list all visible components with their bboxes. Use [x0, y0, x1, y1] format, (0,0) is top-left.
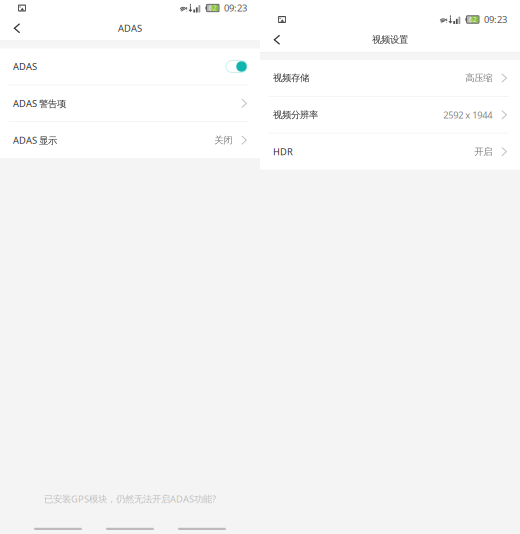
button[interactable]: Recent apps — [166, 517, 238, 530]
button[interactable]: HDR — [260, 134, 520, 170]
staticText: 关闭 — [214, 134, 232, 146]
staticText: 09:23 — [224, 2, 247, 14]
button[interactable]: ADAS 显示 — [0, 122, 260, 158]
staticText: ADAS — [13, 60, 37, 73]
staticText: HDR — [273, 145, 293, 158]
staticText: 视频存储 — [273, 72, 309, 84]
staticText: 62 — [469, 15, 477, 24]
staticText: 2592 x 1944 — [443, 109, 492, 121]
button[interactable]: Home — [94, 517, 166, 530]
button[interactable]: Back — [22, 517, 94, 530]
staticText: 视频分辨率 — [273, 109, 318, 121]
staticText: 视频设置 — [372, 34, 408, 45]
button[interactable]: 视频分辨率 — [260, 97, 520, 133]
button[interactable]: ADAS — [0, 48, 260, 84]
button[interactable]: 视频存储 — [260, 60, 520, 96]
button[interactable]: Back — [260, 26, 294, 54]
staticText: ADAS — [118, 22, 142, 34]
staticText: 开启 — [474, 146, 492, 157]
staticText: 已安装GPS模块，仍然无法开启ADAS功能? — [44, 493, 216, 505]
button[interactable]: ADAS 警告项 — [0, 85, 260, 121]
staticText: ADAS 警告项 — [13, 97, 66, 109]
button[interactable]: Back — [0, 14, 34, 42]
staticText: 高压缩 — [465, 72, 492, 84]
staticText: 62 — [209, 4, 217, 12]
staticText: ADAS 显示 — [13, 134, 57, 146]
staticText: 09:23 — [484, 13, 507, 26]
